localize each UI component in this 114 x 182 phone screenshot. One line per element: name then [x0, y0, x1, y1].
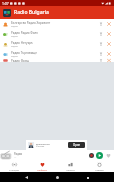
button[interactable]: Back: [22, 173, 31, 182]
button[interactable]: Remove station: [105, 50, 113, 58]
button[interactable]: Play: [95, 151, 104, 160]
button[interactable]: Record station: [97, 50, 105, 58]
staticText: Open: [73, 143, 81, 147]
staticText: Радио: [11, 55, 18, 58]
staticText: Радио Радио Фолк: [11, 31, 38, 35]
button[interactable]: Record: [87, 151, 95, 159]
staticText: Любими: [37, 168, 47, 171]
staticText: Радио Търговище: [11, 51, 37, 55]
button[interactable]: Favourite: [104, 151, 112, 159]
staticText: Фонове: [36, 145, 45, 148]
button[interactable]: Record station: [97, 20, 105, 28]
button[interactable]: Open: [68, 142, 85, 148]
button[interactable]: Recordings: [56, 160, 85, 172]
button[interactable]: Радио Търговище: [0, 49, 114, 59]
staticText: Радио: [11, 45, 18, 48]
button[interactable]: Record station: [97, 40, 105, 48]
staticText: Станции: [9, 168, 19, 171]
button[interactable]: Record station: [97, 59, 105, 62]
button[interactable]: Remove station: [105, 30, 113, 38]
button[interactable]: Българско Радио Хоризонт: [0, 19, 114, 29]
button[interactable]: Recent apps: [83, 173, 92, 182]
button[interactable]: Радио Нетуърк: [0, 39, 114, 49]
button[interactable]: Remove station: [105, 40, 113, 48]
button[interactable]: Home: [53, 173, 62, 182]
staticText: Българско Радио Хоризонт: [11, 21, 51, 25]
staticText: Таймер: [95, 168, 104, 171]
button[interactable]: Remove station: [105, 20, 113, 28]
button[interactable]: Stations: [0, 160, 28, 172]
staticText: Записи: [66, 168, 75, 171]
staticText: ---: [14, 156, 17, 159]
staticText: 1:07: [2, 1, 9, 6]
button[interactable]: Радио Радио Фолк: [0, 29, 114, 39]
staticText: Radio Bulgaria: [14, 9, 49, 16]
button[interactable]: Radio Bulgaria logo: [3, 9, 11, 17]
staticText: Радио Нетуърк: [11, 41, 33, 45]
button[interactable]: Remove station: [105, 59, 113, 62]
button[interactable]: Радио Фреш: [0, 59, 114, 62]
button[interactable]: Европейски: [26, 140, 87, 150]
button[interactable]: Favourites: [28, 160, 56, 172]
button[interactable]: Record station: [97, 30, 105, 38]
staticText: Радио: [11, 25, 18, 28]
button[interactable]: Sleep timer: [85, 160, 114, 172]
staticText: Радио: [14, 152, 23, 156]
staticText: Радио: [11, 35, 18, 38]
staticText: Европейски: [36, 142, 50, 145]
staticText: Радио Фреш: [11, 59, 30, 62]
